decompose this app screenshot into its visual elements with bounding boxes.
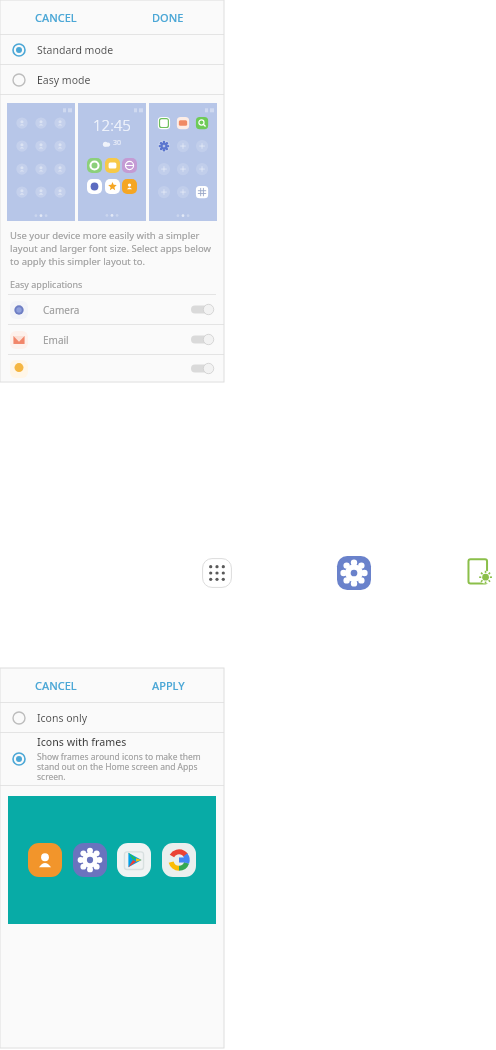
staticText: CANCEL [35,678,77,693]
button[interactable]: APPLY [112,668,224,702]
button[interactable]: Icons with frames [0,733,224,785]
button[interactable]: CANCEL [0,668,112,702]
staticText: Easy applications [10,278,83,290]
staticText: DONE [152,10,184,25]
button[interactable]: Display settings [464,556,496,588]
staticText: Icons only [37,711,88,725]
button[interactable]: DONE [112,0,224,34]
button[interactable]: Email [0,325,224,354]
staticText: Email [43,333,69,347]
button[interactable]: Settings [337,556,371,590]
staticText: CANCEL [35,10,77,25]
staticText: Icons with frames [37,735,127,749]
staticText: Camera [43,303,80,317]
button[interactable]: CANCEL [0,0,112,34]
button[interactable]: Standard mode [0,35,224,64]
button[interactable]: Icons only [0,703,224,732]
staticText: APPLY [152,678,185,693]
button[interactable]: Apps [199,555,235,591]
button[interactable] [0,355,224,382]
staticText: Standard mode [37,43,114,57]
staticText: 30 [113,138,122,148]
button[interactable]: Easy mode [0,65,224,94]
staticText: Show frames around icons to make them st… [37,751,210,783]
staticText: Easy mode [37,73,91,87]
staticText: Use your device more easily with a simpl… [10,229,214,268]
staticText: 12:45 [93,115,131,135]
button[interactable]: Camera [0,295,224,324]
